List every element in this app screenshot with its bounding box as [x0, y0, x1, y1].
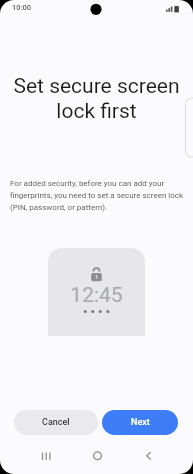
staticText: Cancel: [42, 417, 70, 428]
staticText: Next: [131, 417, 150, 428]
button[interactable]: [138, 446, 158, 466]
staticText: For added security, before you can add y…: [10, 179, 184, 212]
staticText: Set secure screen lock first: [0, 74, 193, 124]
staticText: 10:00: [12, 3, 32, 12]
staticText: 12:45: [48, 283, 145, 308]
button[interactable]: [36, 446, 56, 466]
button[interactable]: [87, 446, 107, 466]
button[interactable]: Cancel: [14, 410, 98, 435]
button[interactable]: Next: [102, 410, 178, 435]
